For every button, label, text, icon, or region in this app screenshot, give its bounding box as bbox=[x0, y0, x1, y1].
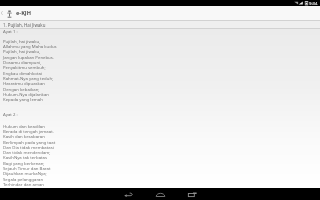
staticText: Sejauh Timur dan Barat bbox=[3, 165, 51, 171]
staticText: Dan tidak mendendam; bbox=[3, 149, 51, 155]
staticText: Segala pelanggaran bbox=[3, 176, 44, 182]
staticText: Allahmu yang Maha kudus bbox=[3, 43, 57, 49]
staticText: Jangan lupakan Penebus. bbox=[3, 54, 54, 60]
button[interactable]: 1. Pujilah, Hai Jiwaku bbox=[0, 21, 320, 28]
staticText: Hasratmu dipuaskan bbox=[3, 80, 45, 86]
button[interactable]: App icon bbox=[4, 8, 14, 19]
button[interactable]: Back bbox=[119, 188, 137, 200]
button[interactable]: Home bbox=[151, 188, 169, 200]
staticText: Ayat 1 : bbox=[3, 28, 18, 34]
staticText: Dosamu diampuni, bbox=[3, 59, 42, 65]
staticText: Kasih dan kesabaran bbox=[3, 133, 45, 139]
staticText: Rahmat-Nya yang teduh; bbox=[3, 75, 54, 81]
staticText: Dengan kebaikan; bbox=[3, 86, 40, 92]
staticText: KasihNya tak terbatas bbox=[3, 154, 48, 160]
staticText: Bagi yang berkenan; bbox=[3, 160, 45, 166]
staticText: Pujilah, hai jiwaku, bbox=[3, 38, 41, 44]
staticText: 9:34 bbox=[309, 1, 318, 7]
staticText: Berlimpah pada yang taat bbox=[3, 139, 56, 145]
staticText: Penyakitmu sembuh; bbox=[3, 64, 46, 70]
staticText: e-KJH bbox=[16, 9, 31, 17]
staticText: 1. Pujilah, Hai Jiwaku bbox=[3, 22, 46, 28]
staticText: Hukum dan keadilan bbox=[3, 123, 45, 129]
staticText: Engkau dimahkotai bbox=[3, 70, 42, 76]
button[interactable]: Recent apps bbox=[183, 188, 201, 200]
button[interactable]: Navigate up bbox=[0, 6, 4, 20]
staticText: Terhindar dan aman bbox=[3, 181, 44, 187]
staticText: Pujilah, hai jiwaku, bbox=[3, 48, 41, 54]
staticText: Hukum-Nya dijalankan bbox=[3, 91, 49, 97]
staticText: Dan Dia tidak membatasi bbox=[3, 144, 54, 150]
staticText: Ayat 2 : bbox=[3, 111, 18, 117]
staticText: Kepada yang lemah bbox=[3, 96, 43, 102]
staticText: Dijauhkan murkaNya; bbox=[3, 170, 47, 176]
staticText: Berada di tengah jemaat. bbox=[3, 128, 54, 134]
